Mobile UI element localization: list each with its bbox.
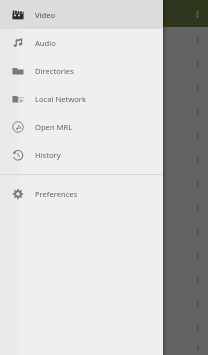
- button[interactable]: Item options: [0, 219, 208, 243]
- button[interactable]: Audio: [0, 29, 163, 57]
- button[interactable]: Item options: [191, 297, 204, 310]
- staticText: Directories: [35, 66, 74, 76]
- button[interactable]: Item options: [191, 105, 204, 118]
- button[interactable]: Item options: [191, 341, 204, 354]
- button[interactable]: Local Network: [0, 85, 163, 113]
- button[interactable]: Item options: [0, 291, 208, 315]
- button[interactable]: Item options: [191, 57, 204, 70]
- button[interactable]: Item options: [0, 99, 208, 123]
- button[interactable]: Item options: [191, 201, 204, 214]
- button[interactable]: Item options: [191, 81, 204, 94]
- button[interactable]: Item options: [191, 225, 204, 238]
- button[interactable]: Close navigation drawer: [0, 0, 208, 355]
- button[interactable]: Item options: [191, 129, 204, 142]
- button[interactable]: Item options: [191, 33, 204, 46]
- staticText: Preferences: [35, 189, 78, 199]
- staticText: History: [35, 150, 61, 160]
- button[interactable]: Item options: [191, 249, 204, 262]
- button[interactable]: Item options: [0, 195, 208, 219]
- button[interactable]: Item options: [191, 321, 204, 334]
- button[interactable]: Item options: [0, 123, 208, 147]
- button[interactable]: Open MRL: [0, 113, 163, 141]
- button[interactable]: Preferences: [0, 180, 163, 208]
- button[interactable]: Directories: [0, 57, 163, 85]
- button[interactable]: Item options: [0, 243, 208, 267]
- staticText: Video: [35, 10, 56, 20]
- button[interactable]: Item options: [0, 315, 208, 339]
- button[interactable]: Item options: [191, 153, 204, 166]
- button[interactable]: Item options: [0, 27, 208, 51]
- button[interactable]: History: [0, 141, 163, 169]
- button[interactable]: Open navigation drawer: [5, 7, 19, 21]
- button[interactable]: Item options: [0, 147, 208, 171]
- button[interactable]: Item options: [0, 171, 208, 195]
- button[interactable]: Item options: [191, 177, 204, 190]
- button[interactable]: Item options: [0, 51, 208, 75]
- button[interactable]: Video: [0, 0, 163, 29]
- staticText: Open MRL: [35, 122, 73, 132]
- button[interactable]: More options: [190, 7, 204, 21]
- button[interactable]: Item options: [0, 339, 208, 355]
- staticText: Local Network: [35, 94, 86, 104]
- button[interactable]: Item options: [0, 267, 208, 291]
- staticText: Audio: [35, 38, 56, 48]
- button[interactable]: Item options: [191, 273, 204, 286]
- button[interactable]: Item options: [0, 75, 208, 99]
